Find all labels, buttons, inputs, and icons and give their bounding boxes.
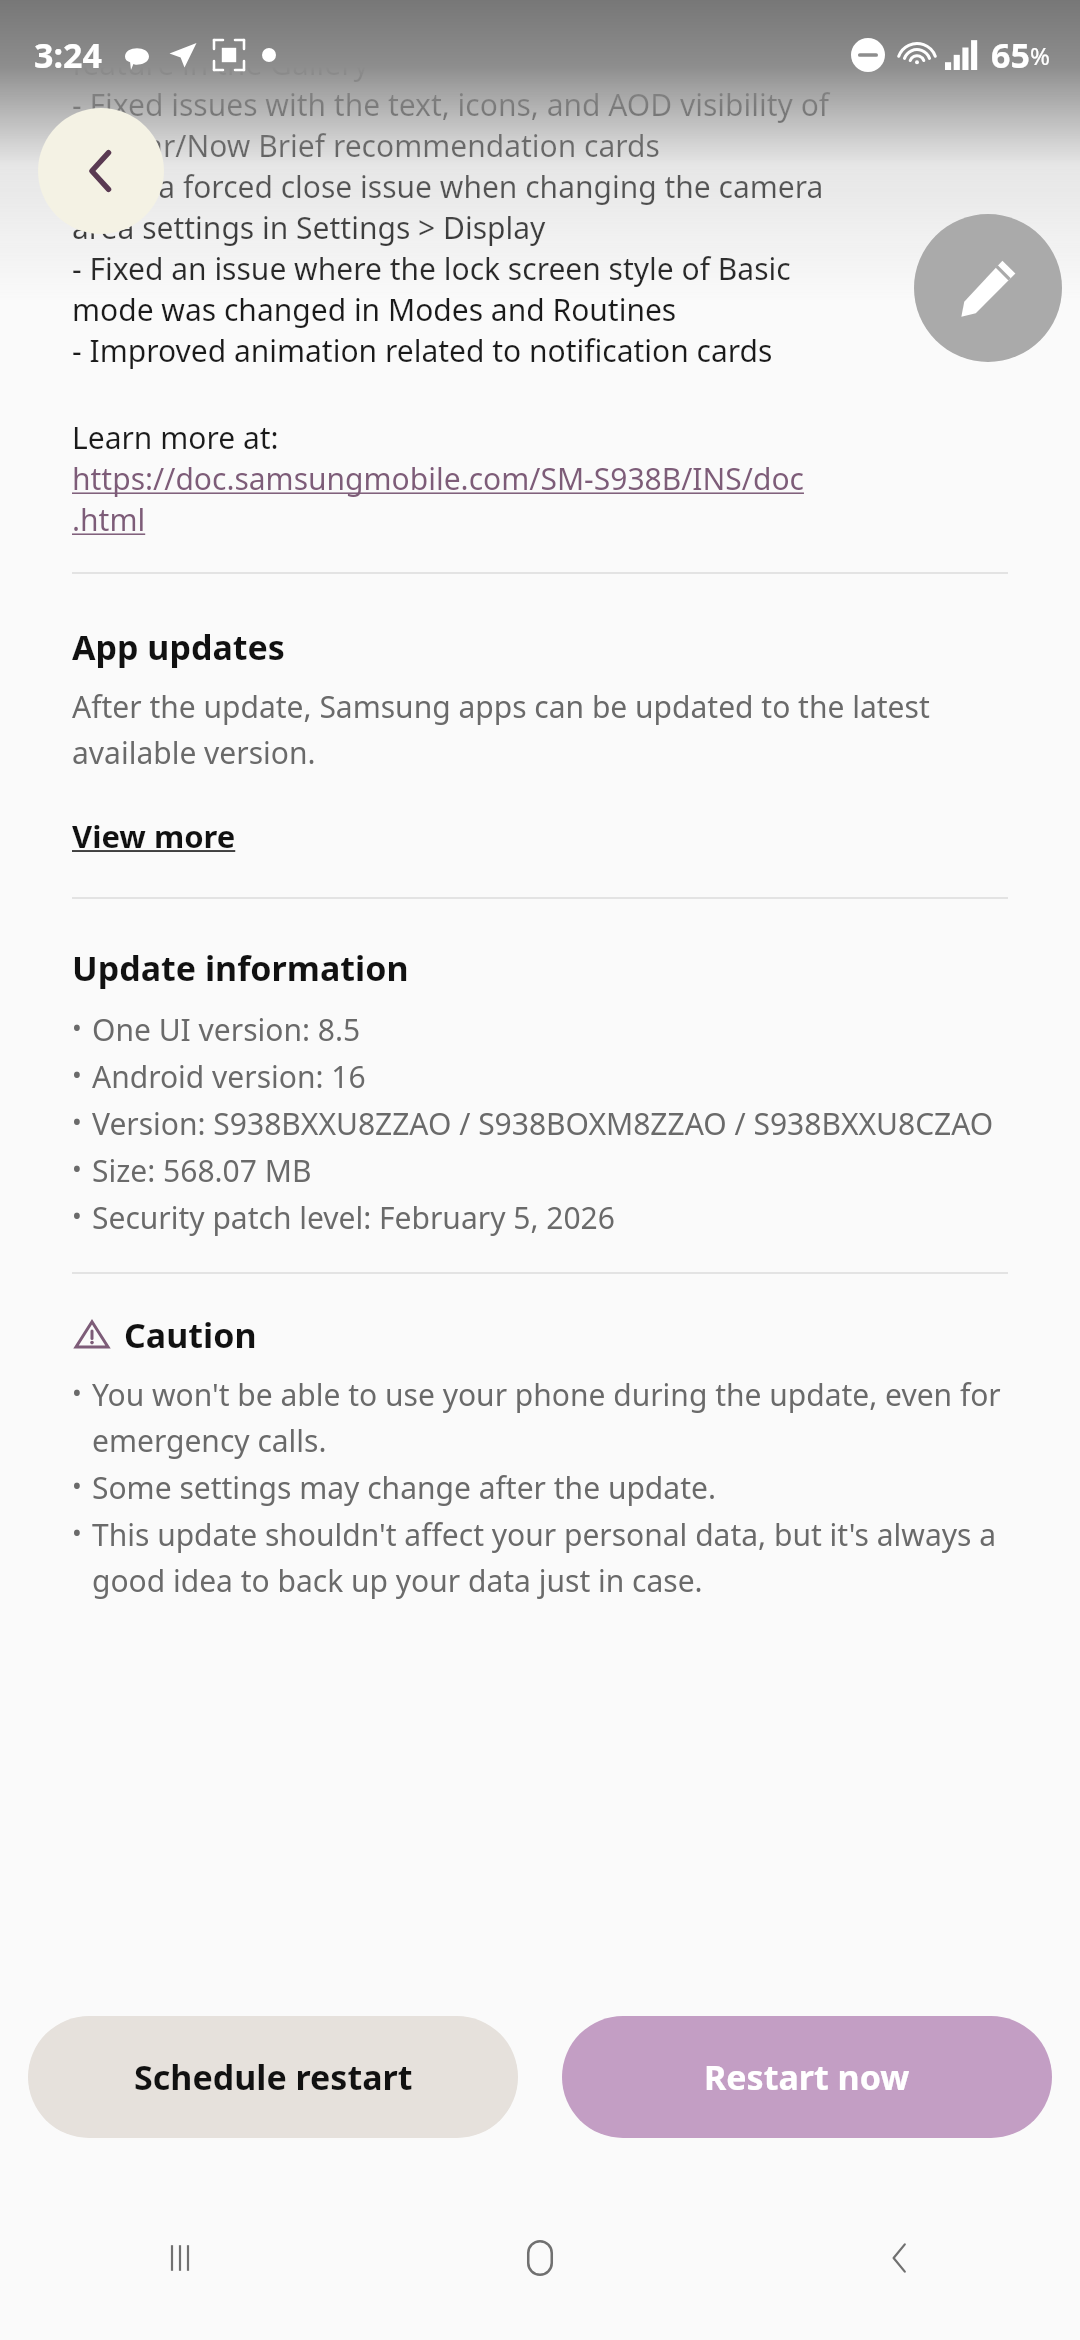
staticText: You won't be able to use your phone duri…: [92, 1374, 1040, 1461]
staticText: Version: S938BXXU8ZZAO / S938BOXM8ZZAO /…: [92, 1103, 994, 1144]
staticText: •: [72, 1467, 82, 1502]
staticText: View more: [72, 815, 236, 857]
button[interactable]: .html: [72, 499, 146, 540]
staticText: •: [72, 1514, 82, 1549]
staticText: This update shouldn't affect your person…: [92, 1514, 1040, 1601]
staticText: - Improved animation related to notifica…: [72, 330, 773, 371]
button[interactable]: View more: [72, 815, 236, 857]
button[interactable]: Back: [38, 108, 164, 234]
staticText: One UI version: 8.5: [92, 1009, 361, 1050]
staticText: App updates: [72, 624, 285, 670]
staticText: area settings in Settings > Display: [72, 207, 546, 248]
staticText: Some settings may change after the updat…: [92, 1467, 716, 1508]
staticText: Bar/Now Brief recommendation cards: [72, 125, 660, 166]
staticText: mode was changed in Modes and Routines: [72, 289, 677, 330]
staticText: - Fixed an issue where the lock screen s…: [72, 248, 791, 289]
staticText: Schedule restart: [134, 2054, 413, 2100]
staticText: %: [1030, 39, 1050, 72]
button[interactable]: Back: [720, 2210, 1080, 2306]
staticText: - Fixed issues with the text, icons, and…: [72, 84, 830, 125]
staticText: •: [72, 1009, 82, 1044]
staticText: feature in the Gallery: [72, 43, 369, 84]
staticText: 3:24: [34, 32, 102, 78]
staticText: d a forced close issue when changing the…: [132, 166, 824, 207]
staticText: Restart now: [704, 2054, 910, 2100]
staticText: Security patch level: February 5, 2026: [92, 1197, 615, 1238]
staticText: Android version: 16: [92, 1056, 366, 1097]
staticText: 65: [991, 32, 1030, 78]
staticText: •: [72, 1197, 82, 1232]
staticText: •: [72, 1150, 82, 1185]
button[interactable]: https://doc.samsungmobile.com/SM-S938B/I…: [72, 458, 804, 499]
button[interactable]: Recent apps: [0, 2210, 360, 2306]
staticText: •: [72, 1103, 82, 1138]
button[interactable]: Schedule restart: [28, 2016, 518, 2138]
staticText: Learn more at:: [72, 417, 279, 458]
staticText: Size: 568.07 MB: [92, 1150, 312, 1191]
staticText: Update information: [72, 945, 409, 991]
staticText: buttons appeared when using the sketch c…: [72, 2, 811, 43]
staticText: •: [72, 1056, 82, 1091]
button[interactable]: Home: [360, 2210, 720, 2306]
staticText: Caution: [124, 1312, 257, 1358]
staticText: After the update, Samsung apps can be up…: [72, 686, 1040, 773]
button[interactable]: Restart now: [562, 2016, 1052, 2138]
button[interactable]: Edit: [914, 214, 1062, 362]
staticText: •: [72, 1374, 82, 1409]
